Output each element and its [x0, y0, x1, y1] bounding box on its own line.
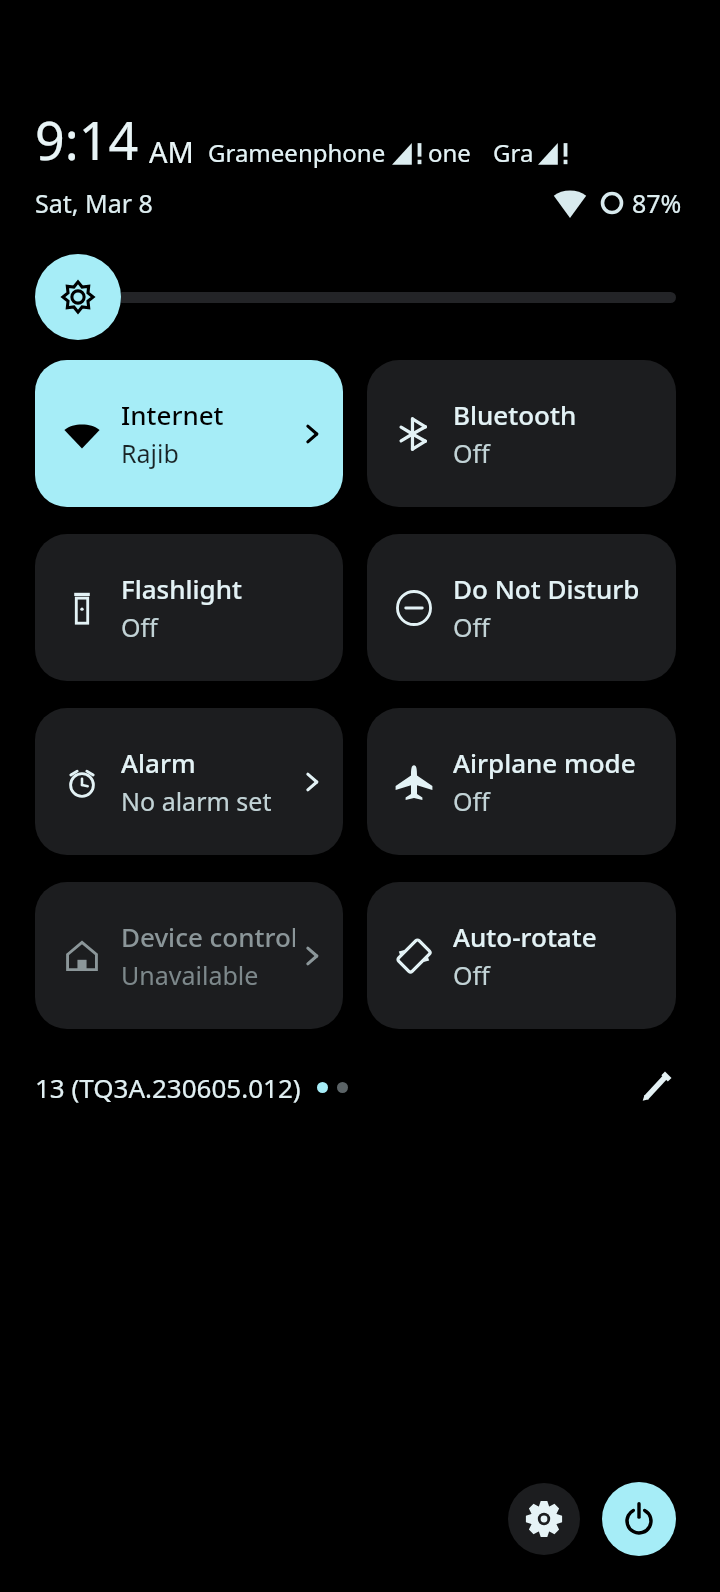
button[interactable]: Power: [602, 1482, 676, 1556]
button[interactable]: [35, 254, 676, 340]
staticText: Off: [453, 436, 490, 470]
staticText: Unavailable: [121, 958, 259, 992]
button[interactable]: Flashlight: [35, 534, 343, 681]
staticText: Off: [453, 610, 490, 644]
staticText: Do Not Disturb: [453, 571, 640, 606]
staticText: Alarm: [121, 745, 196, 780]
staticText: Airplane mode: [453, 745, 636, 780]
staticText: Sat, Mar 8: [35, 186, 153, 220]
button[interactable]: Internet: [35, 360, 343, 507]
button[interactable]: Alarm: [35, 708, 343, 855]
staticText: Internet: [121, 397, 224, 432]
staticText: 13 (TQ3A.230605.012): [35, 1070, 301, 1105]
button[interactable]: Auto-rotate: [367, 882, 676, 1029]
staticText: Bluetooth: [453, 397, 577, 432]
staticText: No alarm set: [121, 784, 272, 818]
staticText: Flashlight: [121, 571, 242, 606]
staticText: Off: [453, 784, 490, 818]
staticText: 9:14: [35, 104, 139, 175]
button[interactable]: Do Not Disturb: [367, 534, 676, 681]
staticText: 87%: [632, 186, 682, 220]
staticText: Grameenphone: [208, 136, 386, 169]
staticText: Gra: [493, 136, 534, 169]
staticText: Device controls: [121, 919, 295, 954]
staticText: Off: [121, 610, 158, 644]
staticText: one: [428, 136, 471, 169]
button[interactable]: Bluetooth: [367, 360, 676, 507]
staticText: AM: [149, 132, 194, 171]
button[interactable]: Settings: [508, 1483, 580, 1555]
staticText: Off: [453, 958, 490, 992]
button[interactable]: Airplane mode: [367, 708, 676, 855]
button[interactable]: Device controls: [35, 882, 343, 1029]
staticText: Rajib: [121, 436, 179, 470]
staticText: Auto-rotate: [453, 919, 597, 954]
button[interactable]: Edit tiles: [630, 1061, 682, 1113]
